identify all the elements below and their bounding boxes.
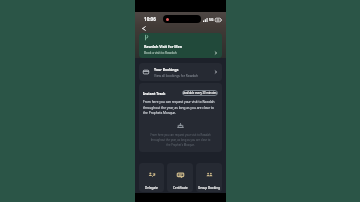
button[interactable]: Back	[138, 23, 148, 33]
button[interactable]: Rawdah Visit for Men	[139, 33, 222, 58]
staticText: Certificate	[173, 186, 188, 190]
staticText: Available every 30 minutes	[183, 91, 217, 95]
staticText: Delegate	[145, 186, 159, 190]
staticText: Instant Track	[143, 91, 166, 96]
staticText: 5G	[209, 17, 214, 22]
button[interactable]: Your Bookings	[139, 63, 222, 81]
button[interactable]: Group Booking	[196, 163, 222, 192]
staticText: Book a visit to Rawdah	[144, 51, 177, 55]
staticText: Group Booking	[198, 186, 220, 190]
staticText: From here you can request your visit to …	[143, 100, 218, 115]
button[interactable]: Delegate	[139, 163, 164, 192]
staticText: View all bookings for Rawdah	[154, 74, 198, 78]
staticText: From here you can request your visit to …	[150, 133, 211, 147]
button[interactable]: Certificate	[167, 163, 193, 192]
staticText: 10:06	[144, 16, 156, 22]
staticText: Your Bookings	[154, 67, 179, 72]
staticText: Rawdah Visit for Men	[144, 44, 183, 49]
